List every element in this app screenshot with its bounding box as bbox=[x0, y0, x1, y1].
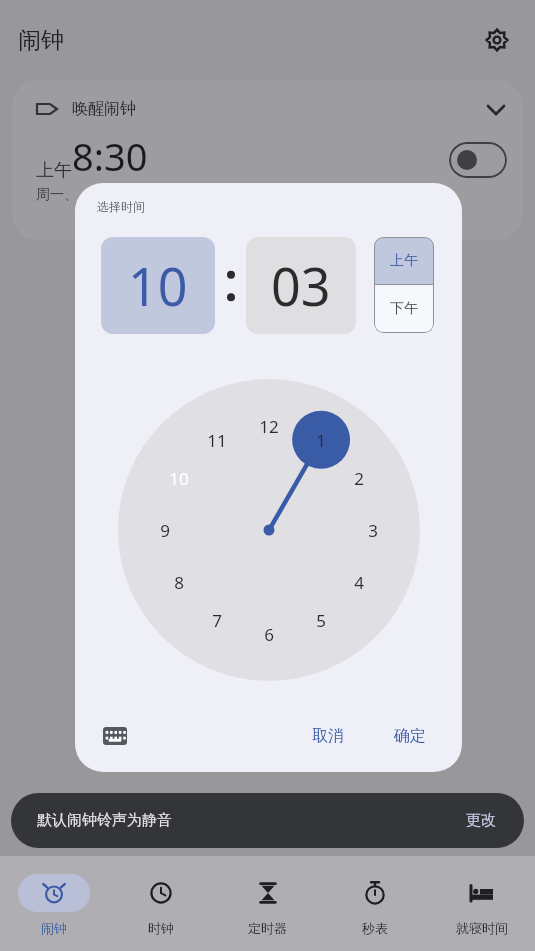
button[interactable]: 秒表 bbox=[321, 856, 428, 951]
staticText: 12 bbox=[259, 415, 279, 438]
staticText: 8:30 bbox=[72, 130, 148, 182]
button[interactable]: 下午 bbox=[374, 285, 434, 333]
staticText: 更改 bbox=[466, 811, 496, 830]
button[interactable]: 唤醒闹钟 bbox=[12, 80, 523, 240]
button[interactable]: 确定 bbox=[380, 718, 440, 754]
staticText: 上午 bbox=[390, 252, 418, 270]
staticText: 默认闹钟铃声为静音 bbox=[37, 811, 172, 830]
staticText: 定时器 bbox=[248, 920, 287, 936]
button[interactable]: 切换到键盘输入 bbox=[97, 718, 133, 754]
button[interactable]: 10 bbox=[101, 237, 215, 334]
button[interactable]: 设置 bbox=[477, 20, 517, 60]
staticText: 就寝时间 bbox=[456, 920, 508, 936]
button[interactable]: 更改 bbox=[460, 807, 502, 834]
staticText: 2 bbox=[354, 467, 364, 490]
staticText: 9 bbox=[160, 519, 170, 542]
staticText: 取消 bbox=[312, 726, 344, 746]
staticText: 确定 bbox=[394, 726, 426, 746]
button[interactable]: 定时器 bbox=[214, 856, 321, 951]
staticText: 闹钟 bbox=[41, 920, 67, 936]
button[interactable]: 03 bbox=[246, 237, 356, 334]
button[interactable]: 闹钟开关 bbox=[449, 142, 507, 178]
staticText: 时钟 bbox=[148, 920, 174, 936]
staticText: 8 bbox=[174, 571, 184, 594]
staticText: 闹钟 bbox=[18, 26, 64, 55]
button[interactable]: 闹钟 bbox=[0, 856, 107, 951]
staticText: 11 bbox=[207, 429, 227, 452]
staticText: 3 bbox=[368, 519, 378, 542]
staticText: 唤醒闹钟 bbox=[72, 99, 136, 119]
staticText: 4 bbox=[354, 571, 364, 594]
staticText: 1 bbox=[316, 429, 326, 452]
button[interactable]: 上午 bbox=[374, 237, 434, 284]
staticText: 下午 bbox=[390, 300, 418, 318]
staticText: 10 bbox=[128, 250, 188, 321]
button[interactable]: 就寝时间 bbox=[428, 856, 535, 951]
staticText: 秒表 bbox=[362, 920, 388, 936]
button[interactable]: 12 bbox=[118, 379, 420, 681]
staticText: 10 bbox=[169, 467, 189, 490]
staticText: 6 bbox=[264, 623, 274, 646]
staticText: 5 bbox=[316, 609, 326, 632]
staticText: 选择时间 bbox=[97, 199, 145, 214]
staticText: 周一、 bbox=[36, 186, 78, 204]
button[interactable]: 取消 bbox=[298, 718, 358, 754]
button[interactable]: 时钟 bbox=[107, 856, 214, 951]
staticText: 03 bbox=[271, 250, 331, 321]
staticText: 7 bbox=[212, 609, 222, 632]
staticText: 上午 bbox=[36, 159, 72, 182]
